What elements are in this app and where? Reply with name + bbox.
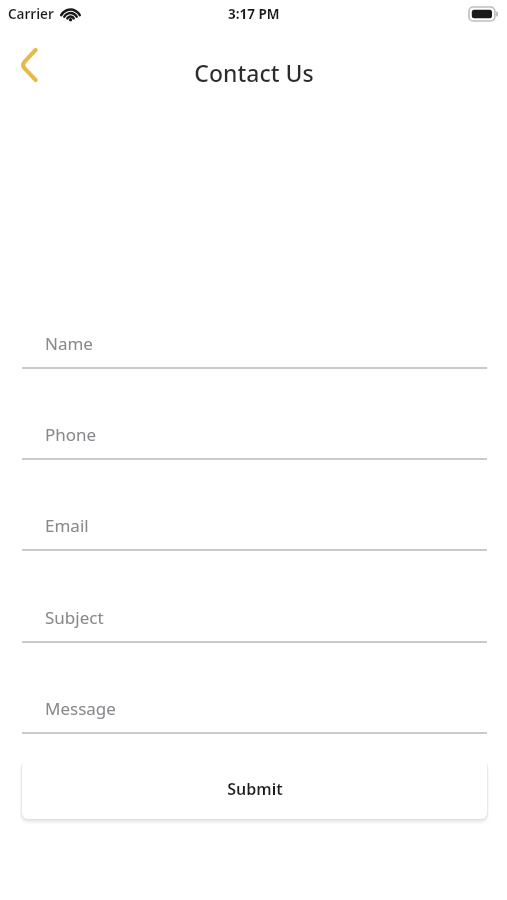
button[interactable]: Email [22,493,487,551]
staticText: Contact Us [194,57,314,88]
button[interactable]: Back [4,42,52,88]
button[interactable]: Name [22,311,487,369]
staticText: 3:17 PM [228,5,280,23]
staticText: Email [45,514,89,537]
button[interactable]: Message [22,676,487,734]
staticText: Phone [45,423,97,446]
staticText: Submit [227,778,283,800]
staticText: Carrier [8,5,54,23]
button[interactable]: Subject [22,585,487,643]
button[interactable]: Phone [22,402,487,460]
staticText: Message [45,697,116,720]
staticText: Subject [45,606,104,629]
button[interactable]: Submit [22,759,487,819]
staticText: Name [45,332,93,355]
